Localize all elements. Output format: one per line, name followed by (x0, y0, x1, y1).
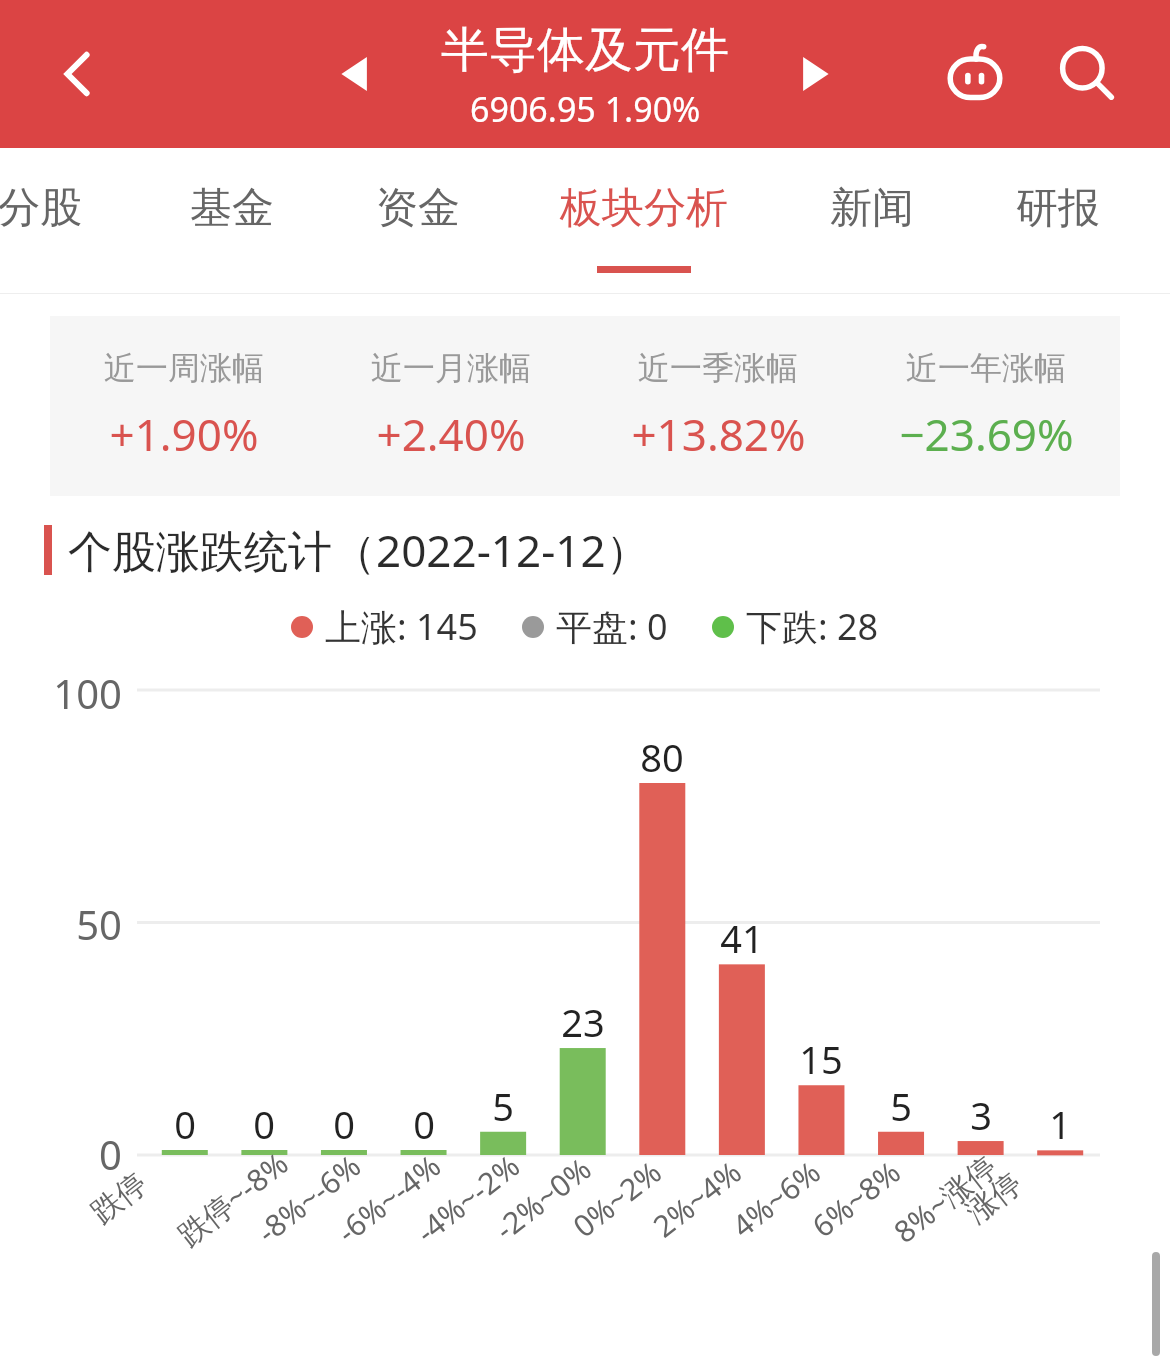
staticText: 分股 (0, 182, 82, 235)
staticText: 6906.95 1.90% (470, 86, 701, 132)
button[interactable]: 基金 (186, 148, 278, 268)
button[interactable]: Back (40, 36, 116, 112)
button[interactable]: 板块分析 (552, 148, 736, 268)
staticText: 板块分析 (560, 182, 728, 235)
staticText: 0%~2% (564, 1151, 670, 1246)
button[interactable]: 近一季涨幅 (584, 316, 852, 496)
staticText: 近一月涨幅 (371, 348, 531, 388)
staticText: -2%~0% (486, 1148, 599, 1249)
staticText: 80 (622, 731, 702, 783)
staticText: 上涨: 145 (325, 602, 478, 651)
staticText: 2%~4% (644, 1151, 750, 1246)
staticText: 15 (781, 1033, 861, 1085)
button[interactable]: 资金 (372, 148, 464, 268)
staticText: 个股涨跌统计（2022-12-12） (68, 520, 650, 580)
staticText: 5 (463, 1080, 543, 1132)
button[interactable]: 新闻 (826, 148, 918, 268)
staticText: 基金 (190, 182, 274, 235)
button[interactable]: Next sector (780, 39, 850, 109)
staticText: 100 (0, 666, 122, 720)
staticText: 0 (145, 1098, 225, 1150)
staticText: 0 (224, 1098, 304, 1150)
button[interactable]: AI assistant (932, 31, 1018, 117)
button[interactable]: Search (1044, 31, 1130, 117)
staticText: 4%~6% (723, 1151, 829, 1246)
staticText: 新闻 (830, 182, 914, 235)
staticText: +1.90% (109, 404, 259, 464)
staticText: 研报 (1016, 182, 1100, 235)
staticText: 平盘: 0 (556, 602, 668, 651)
staticText: 近一季涨幅 (638, 348, 798, 388)
staticText: 6%~8% (803, 1151, 909, 1246)
staticText: 半导体及元件 (441, 20, 729, 80)
staticText: 1 (1020, 1098, 1100, 1150)
staticText: 0 (304, 1098, 384, 1150)
staticText: 41 (702, 912, 782, 964)
staticText: 50 (0, 897, 122, 951)
staticText: 涨停 (959, 1165, 1029, 1231)
button[interactable]: 近一月涨幅 (317, 316, 584, 496)
staticText: +13.82% (631, 404, 806, 464)
staticText: -4%~-2% (407, 1145, 528, 1252)
staticText: +2.40% (376, 404, 526, 464)
staticText: 0 (384, 1098, 464, 1150)
button[interactable]: 分股 (0, 148, 86, 268)
staticText: 跌停~-8% (169, 1143, 296, 1254)
staticText: 下跌: 28 (746, 602, 879, 651)
button[interactable]: 近一年涨幅 (852, 316, 1120, 496)
staticText: 23 (543, 996, 623, 1048)
staticText: -8%~-6% (248, 1145, 369, 1252)
button[interactable]: Previous sector (320, 39, 390, 109)
staticText: −23.69% (899, 404, 1074, 464)
staticText: 5 (861, 1080, 941, 1132)
staticText: 0 (0, 1127, 122, 1181)
staticText: 跌停 (84, 1165, 154, 1231)
staticText: 近一周涨幅 (104, 348, 264, 388)
button[interactable]: 近一周涨幅 (50, 316, 317, 496)
staticText: -6%~-4% (328, 1145, 449, 1252)
staticText: 8%~涨停 (885, 1145, 1005, 1252)
staticText: 近一年涨幅 (906, 348, 1066, 388)
staticText: 3 (941, 1089, 1021, 1141)
button[interactable]: 研报 (1012, 148, 1104, 268)
staticText: 资金 (376, 182, 460, 235)
